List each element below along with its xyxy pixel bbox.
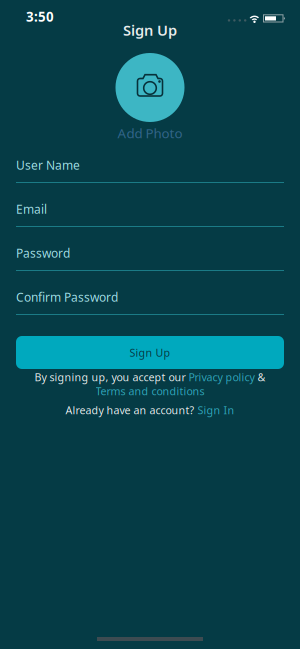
staticText: & [257,370,265,384]
button[interactable] [115,53,184,122]
staticText: Privacy policy [188,370,254,384]
button[interactable]: Confirm Password [16,289,284,315]
button[interactable]: Password [16,245,284,271]
staticText: Sign Up [129,345,170,360]
button[interactable]: Add Photo [117,125,182,141]
staticText: Email [16,201,47,217]
staticText: Sign Up [123,20,177,40]
button[interactable]: Email [16,201,284,227]
button[interactable]: User Name [16,157,284,183]
staticText: 3:50 [26,8,54,25]
staticText: Confirm Password [16,289,118,305]
staticText: Terms and conditions [95,384,204,398]
button[interactable]: Privacy policy [188,370,254,384]
staticText: Already have an account? [65,403,194,417]
staticText: Sign In [197,403,234,417]
button[interactable]: Terms and conditions [95,384,204,398]
button[interactable]: Sign Up [16,336,284,369]
button[interactable]: Sign In [197,403,234,417]
staticText: Add Photo [117,124,182,142]
staticText: By signing up, you accept our [34,370,185,384]
staticText: Password [16,245,70,261]
staticText: User Name [16,157,80,173]
